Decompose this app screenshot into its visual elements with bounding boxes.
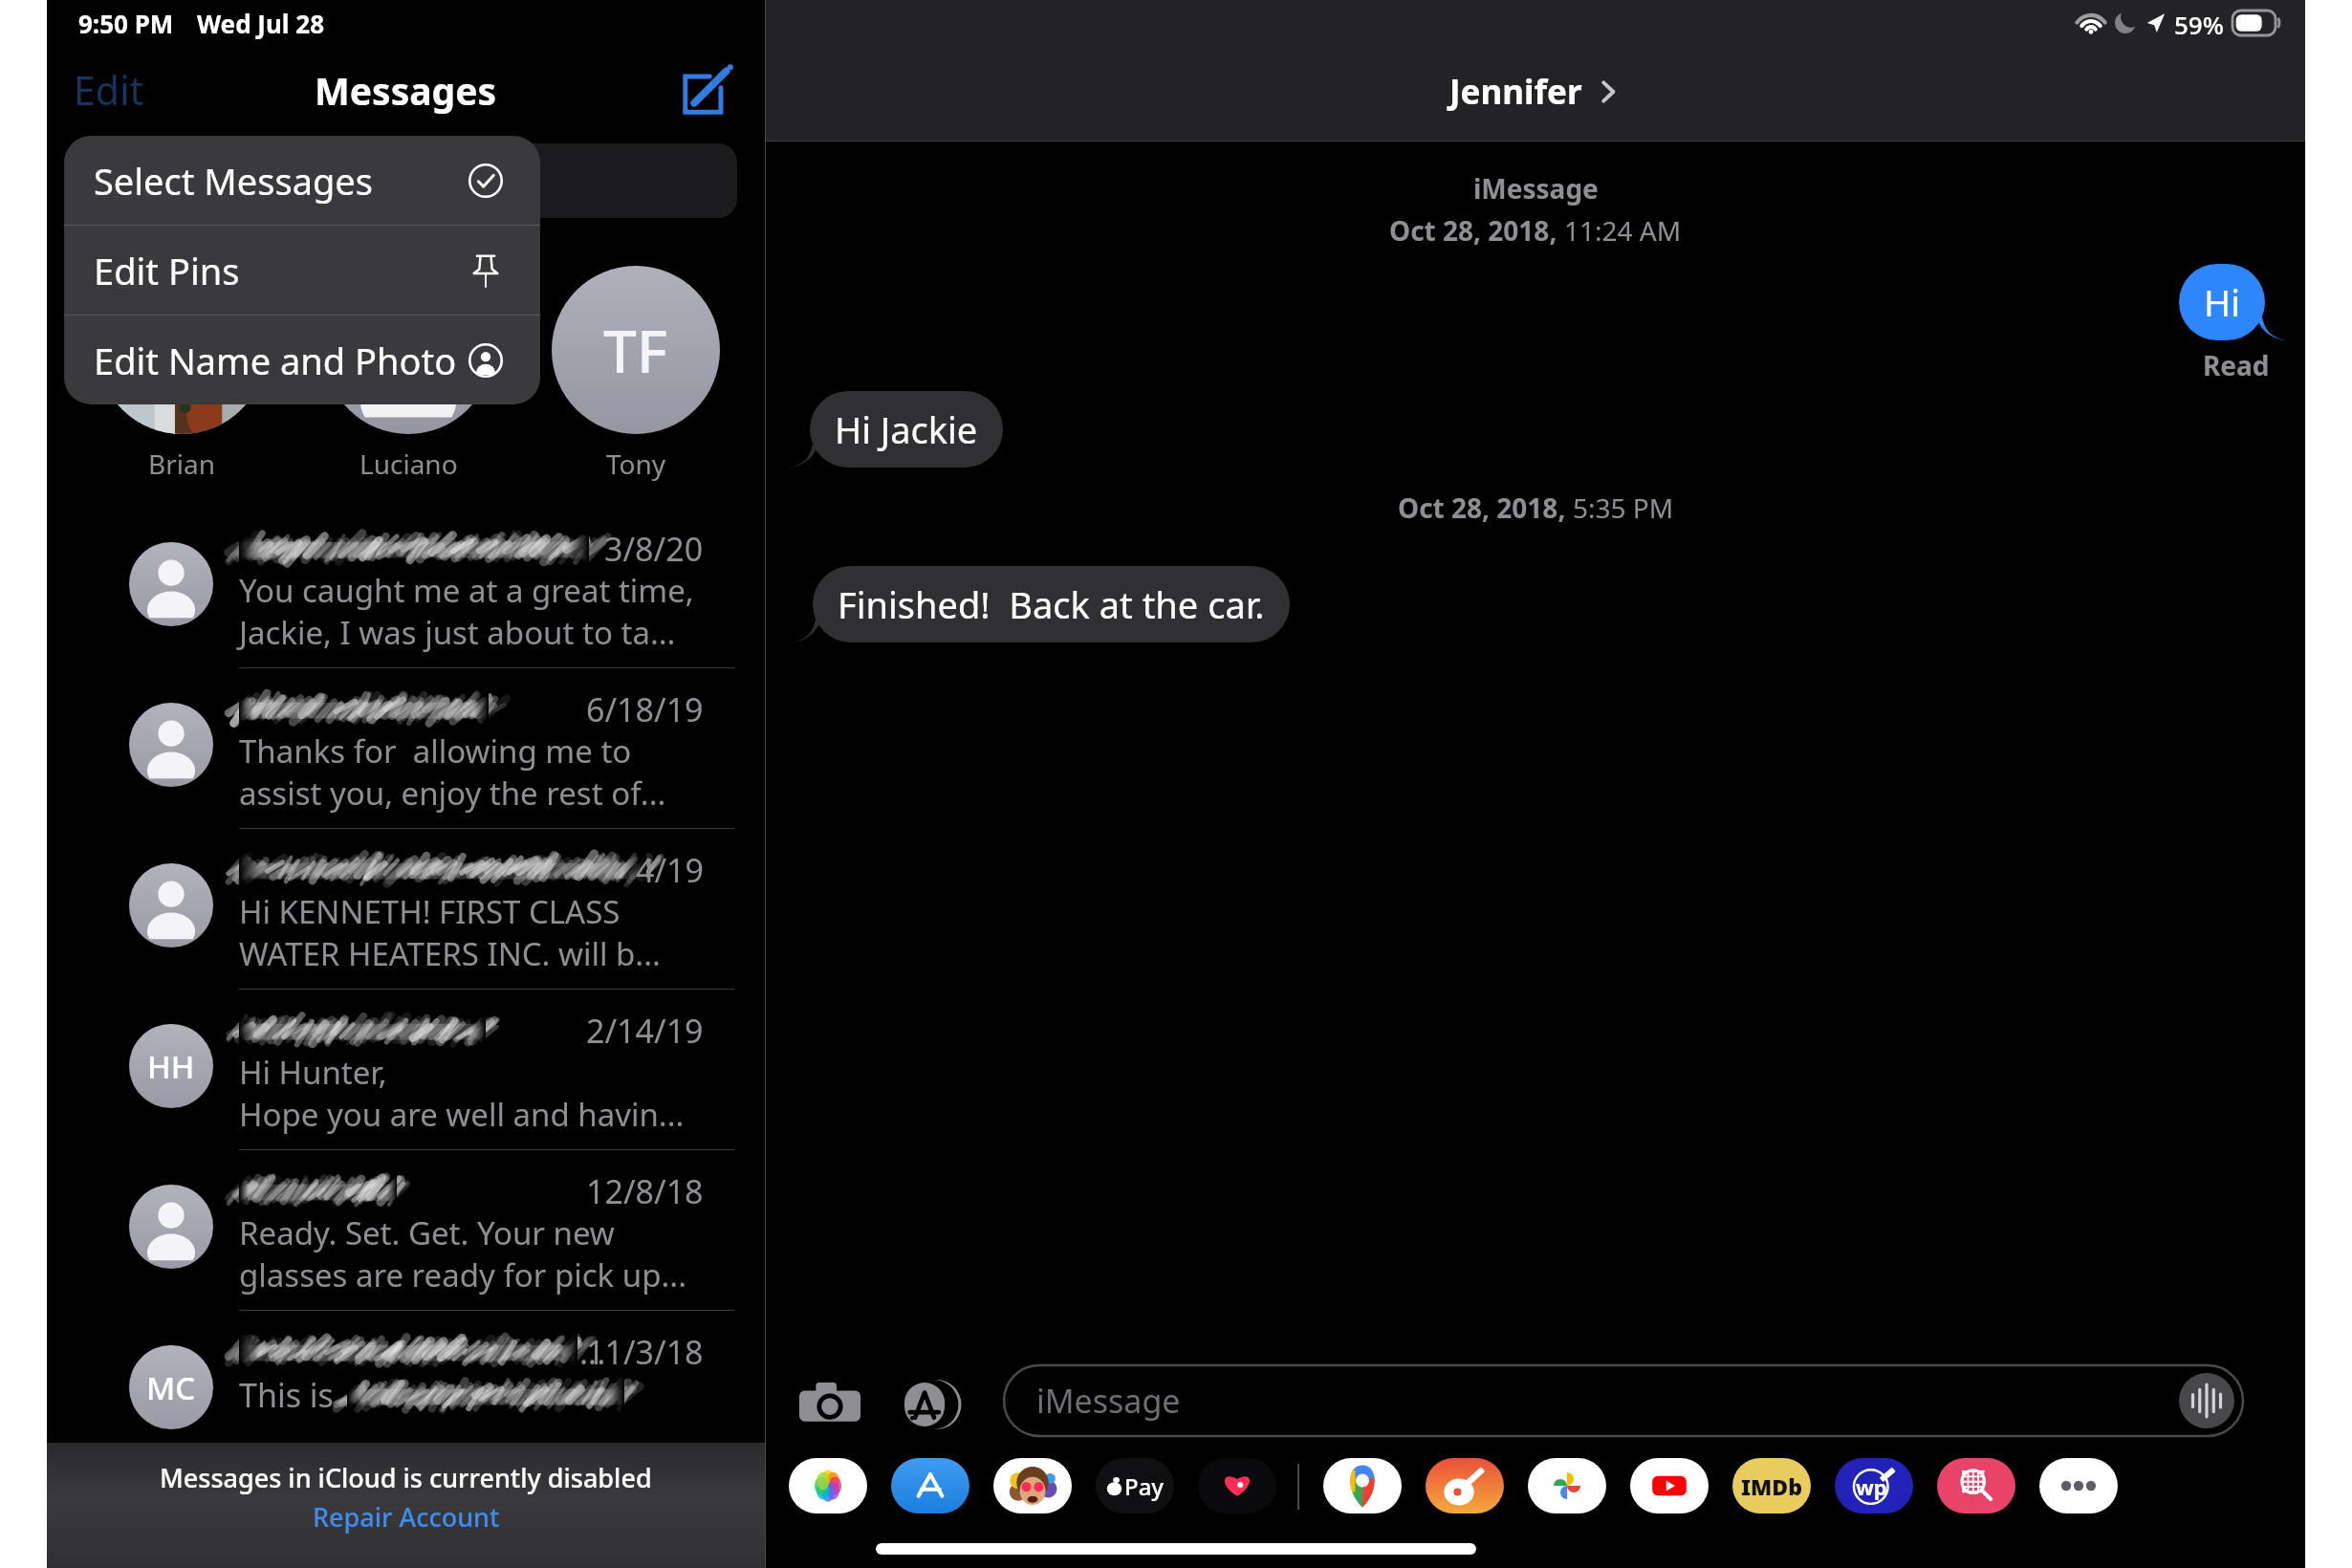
staticText: Ready. Set. Get. Your new xyxy=(239,1211,615,1254)
staticText: 5:35 PM xyxy=(1573,490,1674,526)
staticText: Tony xyxy=(606,446,666,482)
staticText: Pay xyxy=(1124,1470,1165,1502)
staticText: 12/8/18 xyxy=(586,1169,704,1211)
staticText: Luciano xyxy=(359,446,458,482)
button[interactable]: Google Photos xyxy=(1528,1458,1606,1514)
staticText: 2/14/19 xyxy=(586,1009,704,1051)
staticText: 59% xyxy=(2174,8,2224,38)
button[interactable]: HH xyxy=(47,990,765,1150)
button[interactable]: Edit Name and Photo xyxy=(64,316,540,404)
staticText: WATER HEATERS INC. will b... xyxy=(239,932,661,975)
button[interactable]: App Store xyxy=(891,1458,969,1514)
staticText: You caught me at a great time, xyxy=(239,569,694,612)
staticText: 9:50 PM xyxy=(78,7,174,40)
button[interactable]: Jennifer xyxy=(1449,69,1622,115)
button[interactable]: Compose new message xyxy=(677,59,738,120)
staticText: iMessage xyxy=(1036,1379,1181,1423)
button[interactable]: More xyxy=(2039,1458,2118,1514)
button[interactable]: Edit Pins xyxy=(64,226,540,315)
staticText: 11:24 AM xyxy=(1564,212,1682,249)
staticText: Edit xyxy=(74,63,144,117)
staticText: Oct 28, 2018, xyxy=(1398,490,1573,526)
button[interactable]: MC xyxy=(47,1311,765,1471)
staticText: Select Messages xyxy=(94,156,373,206)
button[interactable]: Apple Pay xyxy=(1096,1458,1174,1514)
staticText: MC xyxy=(146,1366,196,1409)
staticText: 11/3/18 xyxy=(586,1330,704,1372)
button[interactable]: Record audio message xyxy=(2178,1372,2235,1429)
button[interactable]: Repair Account xyxy=(313,1499,500,1535)
staticText: Edit Pins xyxy=(94,246,240,295)
staticText: Finished! Back at the car. xyxy=(838,579,1265,629)
button[interactable]: Edit xyxy=(74,63,144,117)
staticText: Hope you are well and havin... xyxy=(239,1093,685,1136)
staticText: This is xyxy=(239,1373,334,1417)
staticText: iMessage xyxy=(1473,170,1599,207)
button[interactable]: Camera xyxy=(798,1377,861,1432)
button[interactable]: Memoji xyxy=(993,1458,1072,1514)
button[interactable]: Maps xyxy=(1323,1458,1402,1514)
staticText: Jennifer xyxy=(1449,69,1582,115)
staticText: Hi KENNETH! FIRST CLASS xyxy=(239,890,621,933)
button[interactable]: 3/8/20 xyxy=(47,508,765,668)
button[interactable]: 6/18/19 xyxy=(47,668,765,829)
button[interactable]: YouTube xyxy=(1630,1458,1709,1514)
staticText: ... xyxy=(579,1330,606,1372)
staticText: Messages xyxy=(315,65,497,116)
button[interactable]: IMDb xyxy=(1732,1458,1811,1514)
staticText: wp xyxy=(1856,1472,1887,1501)
button[interactable]: 12/8/18 xyxy=(47,1150,765,1311)
staticText: Hi Hunter, xyxy=(239,1051,387,1094)
staticText: IMDb xyxy=(1741,1471,1803,1501)
staticText: Thanks for allowing me to xyxy=(239,730,632,773)
staticText: 4/19 xyxy=(636,848,704,890)
staticText: 6/18/19 xyxy=(586,687,704,730)
button[interactable]: Search xyxy=(74,143,737,218)
staticText: Edit Name and Photo xyxy=(94,336,457,385)
button[interactable]: Music xyxy=(1426,1458,1504,1514)
button[interactable]: iMessage text field xyxy=(1004,1365,2243,1436)
staticText: Read xyxy=(2203,347,2270,383)
staticText: Messages in iCloud is currently disabled xyxy=(160,1460,652,1495)
staticText: Wed Jul 28 xyxy=(197,7,325,40)
button[interactable]: Brian xyxy=(98,266,266,482)
button[interactable]: Image Search xyxy=(1937,1458,2015,1514)
staticText: assist you, enjoy the rest of... xyxy=(239,772,666,815)
button[interactable]: TF xyxy=(552,266,720,482)
staticText: Jackie, I was just about to ta... xyxy=(239,611,676,654)
staticText: Oct 28, 2018, xyxy=(1389,212,1564,249)
staticText: TF xyxy=(603,310,668,390)
button[interactable]: Washington Post xyxy=(1835,1458,1913,1514)
button[interactable]: Photos xyxy=(789,1458,867,1514)
staticText: HH xyxy=(147,1045,195,1088)
staticText: Repair Account xyxy=(313,1499,500,1535)
button[interactable]: App Store xyxy=(900,1375,959,1434)
staticText: glasses are ready for pick up... xyxy=(239,1253,687,1296)
staticText: Brian xyxy=(148,446,216,482)
staticText: Hi Jackie xyxy=(835,404,978,454)
staticText: 3/8/20 xyxy=(604,527,704,569)
button[interactable]: Luciano xyxy=(324,266,492,482)
button[interactable]: Select Messages xyxy=(64,136,540,225)
button[interactable]: Digital Touch xyxy=(1198,1458,1276,1514)
button[interactable]: 4/19 xyxy=(47,829,765,990)
staticText: Hi xyxy=(2204,277,2240,327)
